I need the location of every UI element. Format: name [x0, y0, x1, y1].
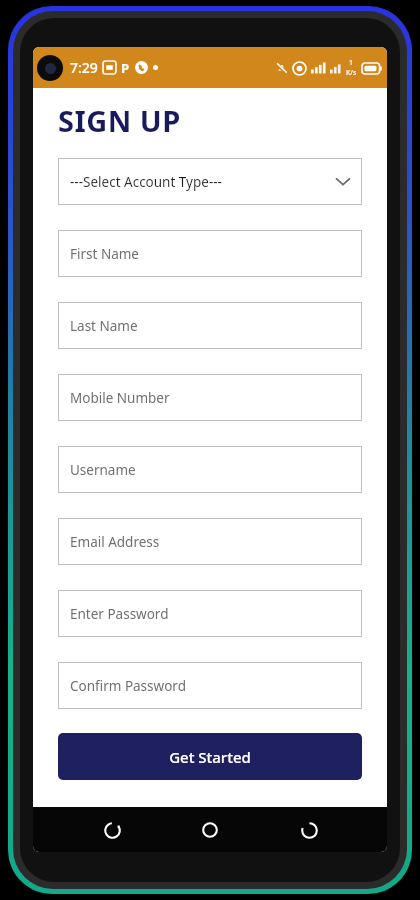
staticText: SIGN UP	[58, 101, 181, 140]
button[interactable]: Username	[58, 446, 362, 493]
staticText: Email Address	[70, 533, 160, 551]
staticText: Mobile Number	[70, 389, 170, 407]
button[interactable]: Confirm Password	[58, 662, 362, 709]
staticText: Get Started	[169, 747, 251, 767]
button[interactable]: Home	[190, 810, 230, 850]
button[interactable]: Mobile Number	[58, 374, 362, 421]
staticText: 7:29	[70, 58, 98, 77]
staticText: Confirm Password	[70, 677, 186, 695]
button[interactable]: Email Address	[58, 518, 362, 565]
staticText: ---Select Account Type---	[70, 173, 222, 191]
staticText: Last Name	[70, 317, 138, 335]
staticText: Username	[70, 461, 136, 479]
staticText: K/s	[346, 68, 357, 78]
button[interactable]: Back	[289, 810, 329, 850]
button[interactable]: Recent apps	[92, 810, 132, 850]
staticText: 1	[349, 58, 354, 68]
staticText: Enter Password	[70, 605, 169, 623]
button[interactable]: First Name	[58, 230, 362, 277]
staticText: P	[121, 59, 130, 77]
staticText: First Name	[70, 245, 139, 263]
button[interactable]: Enter Password	[58, 590, 362, 637]
button[interactable]: ---Select Account Type---	[58, 158, 362, 205]
button[interactable]: Get Started	[58, 733, 362, 780]
button[interactable]: Last Name	[58, 302, 362, 349]
